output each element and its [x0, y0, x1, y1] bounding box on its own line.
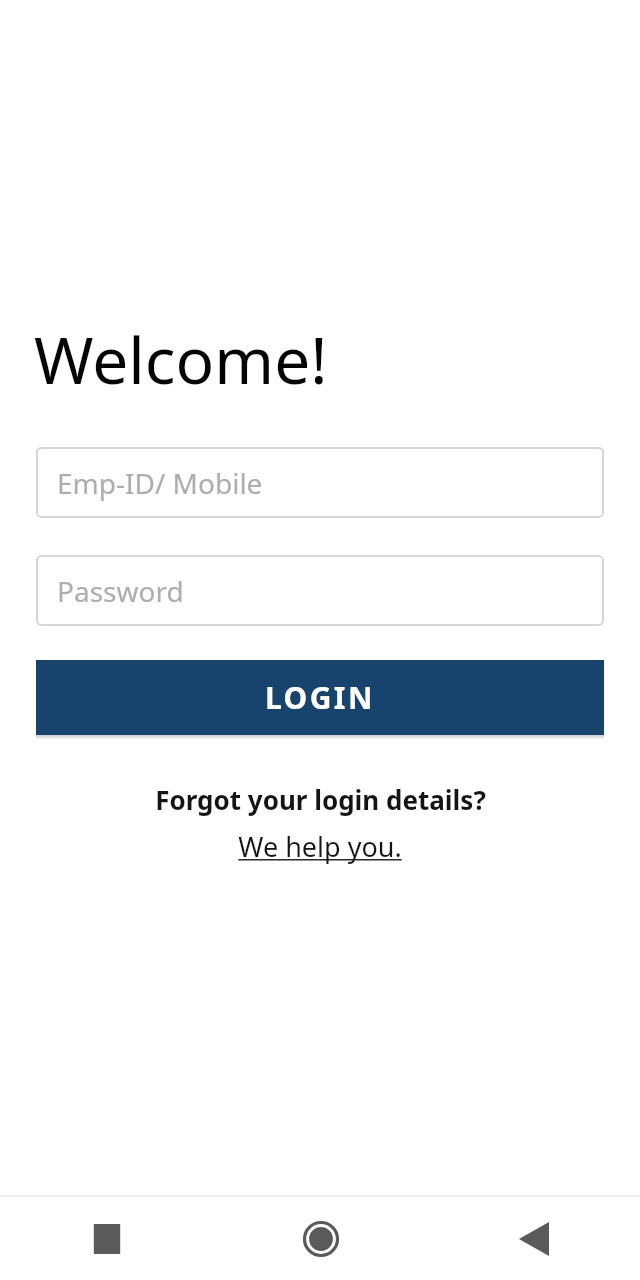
staticText: We help you.: [238, 828, 402, 865]
staticText: LOGIN: [265, 677, 375, 718]
staticText: Welcome!: [34, 316, 328, 403]
button[interactable]: Emp-ID/ Mobile: [36, 447, 604, 518]
button[interactable]: LOGIN: [36, 660, 604, 735]
button[interactable]: Recent apps: [0, 1197, 214, 1280]
button[interactable]: We help you.: [238, 828, 402, 865]
staticText: Password: [57, 572, 184, 610]
staticText: Emp-ID/ Mobile: [57, 464, 263, 502]
button[interactable]: Home: [214, 1197, 427, 1280]
button[interactable]: Back: [427, 1197, 640, 1280]
button[interactable]: Password: [36, 555, 604, 626]
staticText: Forgot your login details?: [155, 782, 486, 817]
